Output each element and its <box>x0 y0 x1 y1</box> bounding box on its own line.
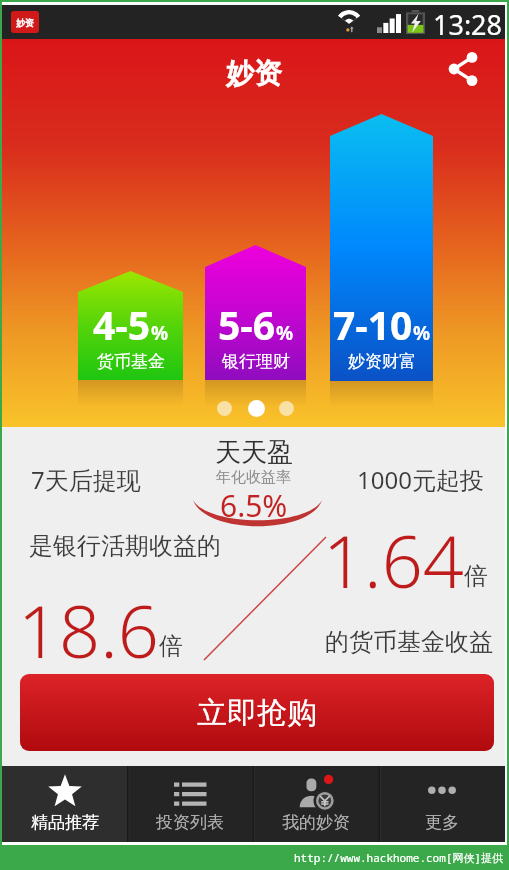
staticText: 妙资 <box>226 56 282 91</box>
staticText: 4-5 <box>93 298 151 351</box>
staticText: 更多 <box>425 812 459 833</box>
staticText: 妙资财富 <box>348 351 416 372</box>
staticText: 投资列表 <box>156 812 224 833</box>
button[interactable]: Share <box>444 47 484 87</box>
button[interactable]: 精品推荐 <box>2 766 127 842</box>
staticText: 7-10 <box>333 298 413 351</box>
staticText: 我的妙资 <box>282 812 350 833</box>
staticText: 妙资 <box>16 17 34 28</box>
staticText: 货币基金 <box>97 351 165 372</box>
staticText: 银行理财 <box>222 351 290 372</box>
staticText: 倍 <box>464 561 488 591</box>
staticText: % <box>413 320 431 346</box>
staticText: 精品推荐 <box>31 812 99 833</box>
staticText: 的货币基金收益 <box>325 627 493 657</box>
staticText: 7天后提现 <box>31 463 141 496</box>
staticText: % <box>151 320 169 346</box>
button[interactable]: 投资列表 <box>127 766 253 842</box>
staticText: 1000元起投 <box>357 463 484 496</box>
staticText: 立即抢购 <box>197 694 317 732</box>
staticText: % <box>276 320 294 346</box>
button[interactable]: 我的妙资 <box>253 766 379 842</box>
staticText: 5-6 <box>218 298 276 351</box>
staticText: 倍 <box>159 631 183 661</box>
staticText: 是银行活期收益的 <box>29 531 221 561</box>
staticText: 1.64 <box>323 511 464 609</box>
staticText: 13:28 <box>433 6 503 40</box>
staticText: 18.6 <box>18 581 159 679</box>
button[interactable]: 更多 <box>379 766 505 842</box>
staticText: http://www.hackhome.com[网侠]提供 <box>294 850 503 865</box>
staticText: 天天盈 <box>215 436 293 469</box>
staticText: 年化收益率 <box>216 468 291 487</box>
staticText: 6.5% <box>220 485 288 526</box>
button[interactable]: 立即抢购 <box>20 674 494 751</box>
